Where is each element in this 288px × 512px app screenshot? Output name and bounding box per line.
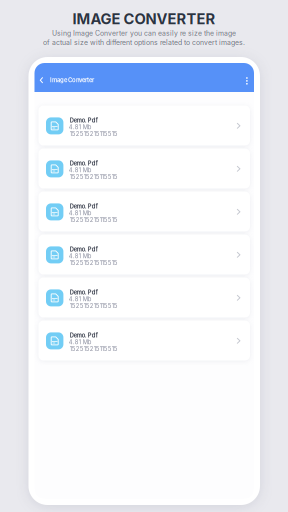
button[interactable]: Demo. Pdf bbox=[38, 148, 250, 188]
staticText: Demo. Pdf bbox=[70, 160, 98, 167]
staticText: Using Image Converter you can easily re … bbox=[52, 29, 236, 37]
staticText: Image Converter bbox=[50, 76, 94, 84]
staticText: 152515215115515 bbox=[70, 130, 118, 137]
staticText: IMAGE CONVERTER bbox=[72, 10, 215, 28]
button[interactable]: Demo. Pdf bbox=[38, 320, 250, 360]
staticText: 4.81 Mb bbox=[69, 210, 92, 217]
staticText: 4.81 Mb bbox=[69, 253, 92, 260]
button[interactable]: More options bbox=[241, 71, 253, 91]
staticText: Demo. Pdf bbox=[70, 332, 98, 339]
button[interactable]: Back bbox=[35, 70, 48, 90]
staticText: Demo. Pdf bbox=[70, 117, 98, 124]
button[interactable]: Demo. Pdf bbox=[38, 191, 250, 231]
staticText: 152515215115515 bbox=[70, 216, 118, 223]
staticText: 4.81 Mb bbox=[69, 124, 92, 131]
button[interactable]: Demo. Pdf bbox=[38, 234, 250, 274]
staticText: 4.81 Mb bbox=[69, 339, 92, 346]
button[interactable]: Demo. Pdf bbox=[38, 277, 250, 317]
staticText: Demo. Pdf bbox=[70, 246, 98, 253]
staticText: 152515215115515 bbox=[70, 173, 118, 180]
staticText: 152515215115515 bbox=[70, 259, 118, 266]
staticText: 4.81 Mb bbox=[69, 167, 92, 174]
staticText: 152515215115515 bbox=[70, 302, 118, 309]
button[interactable]: Image Converter bbox=[49, 73, 95, 87]
staticText: of actual size with different options re… bbox=[43, 38, 245, 47]
staticText: Demo. Pdf bbox=[70, 203, 98, 210]
button[interactable]: Demo. Pdf bbox=[38, 105, 250, 145]
staticText: Demo. Pdf bbox=[70, 289, 98, 296]
staticText: 4.81 Mb bbox=[69, 296, 92, 303]
staticText: 152515215115515 bbox=[70, 345, 118, 352]
